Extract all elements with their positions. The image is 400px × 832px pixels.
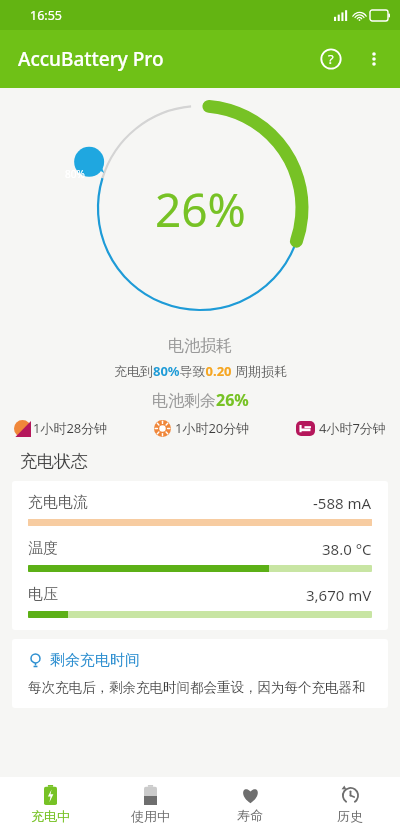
staticText: 历史 xyxy=(337,808,363,824)
staticText: 寿命 xyxy=(237,807,263,823)
staticText: 26% xyxy=(155,178,246,241)
staticText: 38.0 °C xyxy=(322,539,372,559)
staticText: ? xyxy=(328,50,334,68)
staticText: 充电电流 xyxy=(28,493,88,512)
staticText: 3,670 mV xyxy=(306,585,372,605)
button[interactable]: 历史 xyxy=(300,777,400,832)
staticText: 电池损耗 xyxy=(168,336,232,356)
staticText: 剩余充电时间 xyxy=(50,651,140,670)
staticText: 充电中 xyxy=(31,808,70,824)
button[interactable]: 使用中 xyxy=(100,777,200,832)
staticText: 1小时28分钟 xyxy=(33,419,108,437)
staticText: 每次充电后，剩余充电时间都会重设，因为每个充电器和 xyxy=(28,679,366,696)
staticText: 温度 xyxy=(28,539,58,558)
staticText: 16:55 xyxy=(30,7,62,24)
button[interactable]: 寿命 xyxy=(200,777,300,832)
staticText: 充电到80%导致0.20 周期损耗 xyxy=(114,362,287,380)
staticText: 4小时7分钟 xyxy=(319,419,386,437)
staticText: 使用中 xyxy=(131,808,170,824)
staticText: 电池剩余26% xyxy=(152,389,249,411)
staticText: -588 mA xyxy=(313,493,372,513)
staticText: 电压 xyxy=(28,585,58,604)
staticText: AccuBattery Pro xyxy=(18,46,164,72)
staticText: 充电状态 xyxy=(20,451,88,472)
button[interactable]: 剩余充电时间 xyxy=(12,639,388,708)
staticText: 80% xyxy=(65,167,85,181)
button[interactable]: 充电中 xyxy=(0,777,100,832)
staticText: 1小时20分钟 xyxy=(175,419,250,437)
button[interactable]: Help xyxy=(308,36,354,82)
button[interactable]: More options xyxy=(354,39,394,79)
